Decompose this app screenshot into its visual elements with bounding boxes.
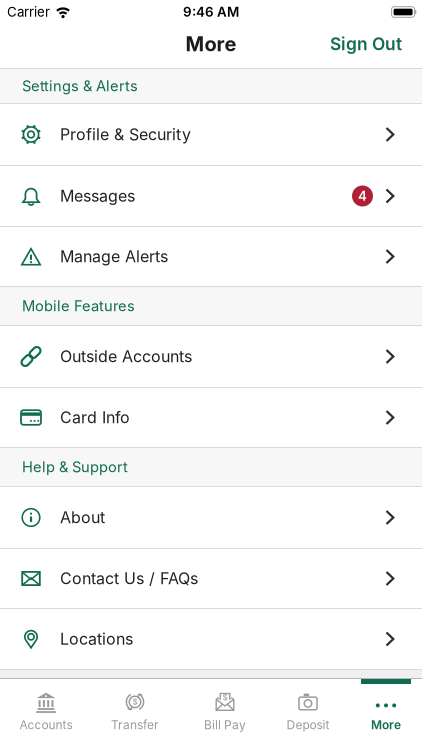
- staticText: Outside Accounts: [60, 347, 192, 366]
- button[interactable]: Locations: [0, 609, 422, 669]
- staticText: Deposit: [286, 718, 329, 732]
- button[interactable]: Contact Us / FAQs: [0, 549, 422, 608]
- staticText: $: [222, 693, 227, 702]
- button[interactable]: Card Info: [0, 388, 422, 447]
- button[interactable]: Outside Accounts: [0, 326, 422, 387]
- button[interactable]: Messages: [0, 166, 422, 226]
- staticText: More: [371, 718, 401, 732]
- staticText: Bill Pay: [204, 718, 246, 732]
- staticText: Settings & Alerts: [22, 77, 138, 95]
- staticText: About: [60, 508, 105, 527]
- button[interactable]: Accounts: [14, 691, 78, 732]
- staticText: Manage Alerts: [60, 247, 168, 266]
- button[interactable]: More: [354, 691, 418, 732]
- button[interactable]: About: [0, 487, 422, 548]
- staticText: Carrier: [7, 4, 50, 20]
- staticText: Accounts: [19, 718, 72, 732]
- button[interactable]: $: [103, 691, 167, 732]
- staticText: Help & Support: [22, 458, 128, 476]
- button[interactable]: Manage Alerts: [0, 227, 422, 286]
- staticText: Locations: [60, 630, 133, 648]
- staticText: Messages: [60, 187, 135, 205]
- staticText: Transfer: [111, 718, 159, 732]
- button[interactable]: Sign Out: [330, 34, 422, 54]
- staticText: 9:46 AM: [183, 4, 239, 20]
- staticText: Profile & Security: [60, 125, 191, 144]
- staticText: Mobile Features: [22, 297, 135, 315]
- staticText: More: [185, 32, 236, 56]
- staticText: Card Info: [60, 408, 130, 427]
- staticText: Contact Us / FAQs: [60, 569, 198, 588]
- staticText: 4: [358, 188, 367, 204]
- staticText: Sign Out: [330, 34, 402, 54]
- button[interactable]: Profile & Security: [0, 104, 422, 165]
- button[interactable]: $: [193, 691, 257, 732]
- staticText: $: [132, 697, 137, 707]
- button[interactable]: Deposit: [276, 691, 340, 732]
